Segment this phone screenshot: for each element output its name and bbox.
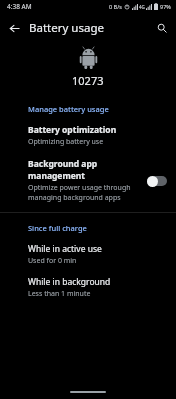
staticText: 4:38 AM bbox=[7, 2, 32, 11]
button[interactable]: While in background bbox=[0, 276, 176, 299]
staticText: 97% bbox=[160, 3, 171, 10]
button[interactable]: Battery optimization bbox=[0, 123, 176, 150]
button[interactable]: Background app management bbox=[0, 158, 176, 203]
staticText: Optimize power usage through bbox=[28, 183, 131, 193]
staticText: Background app management bbox=[28, 158, 142, 182]
staticText: managing background apps bbox=[28, 193, 121, 203]
staticText: Battery optimization bbox=[28, 124, 117, 136]
staticText: 0 B/s bbox=[109, 3, 122, 10]
staticText: Optimizing battery use bbox=[28, 137, 104, 147]
staticText: While in active use bbox=[28, 243, 102, 255]
staticText: Since full charge bbox=[28, 223, 87, 233]
staticText: While in background bbox=[28, 276, 111, 288]
button[interactable]: Back bbox=[4, 18, 24, 38]
staticText: Manage battery usage bbox=[28, 104, 109, 114]
staticText: 10273 bbox=[72, 73, 104, 88]
button[interactable]: Search bbox=[152, 18, 172, 38]
button[interactable]: While in active use bbox=[0, 243, 176, 266]
staticText: Used for 0 min bbox=[28, 256, 77, 266]
staticText: Battery usage bbox=[29, 20, 104, 36]
staticText: 4G bbox=[139, 4, 145, 10]
staticText: Less than 1 minute bbox=[28, 289, 91, 299]
